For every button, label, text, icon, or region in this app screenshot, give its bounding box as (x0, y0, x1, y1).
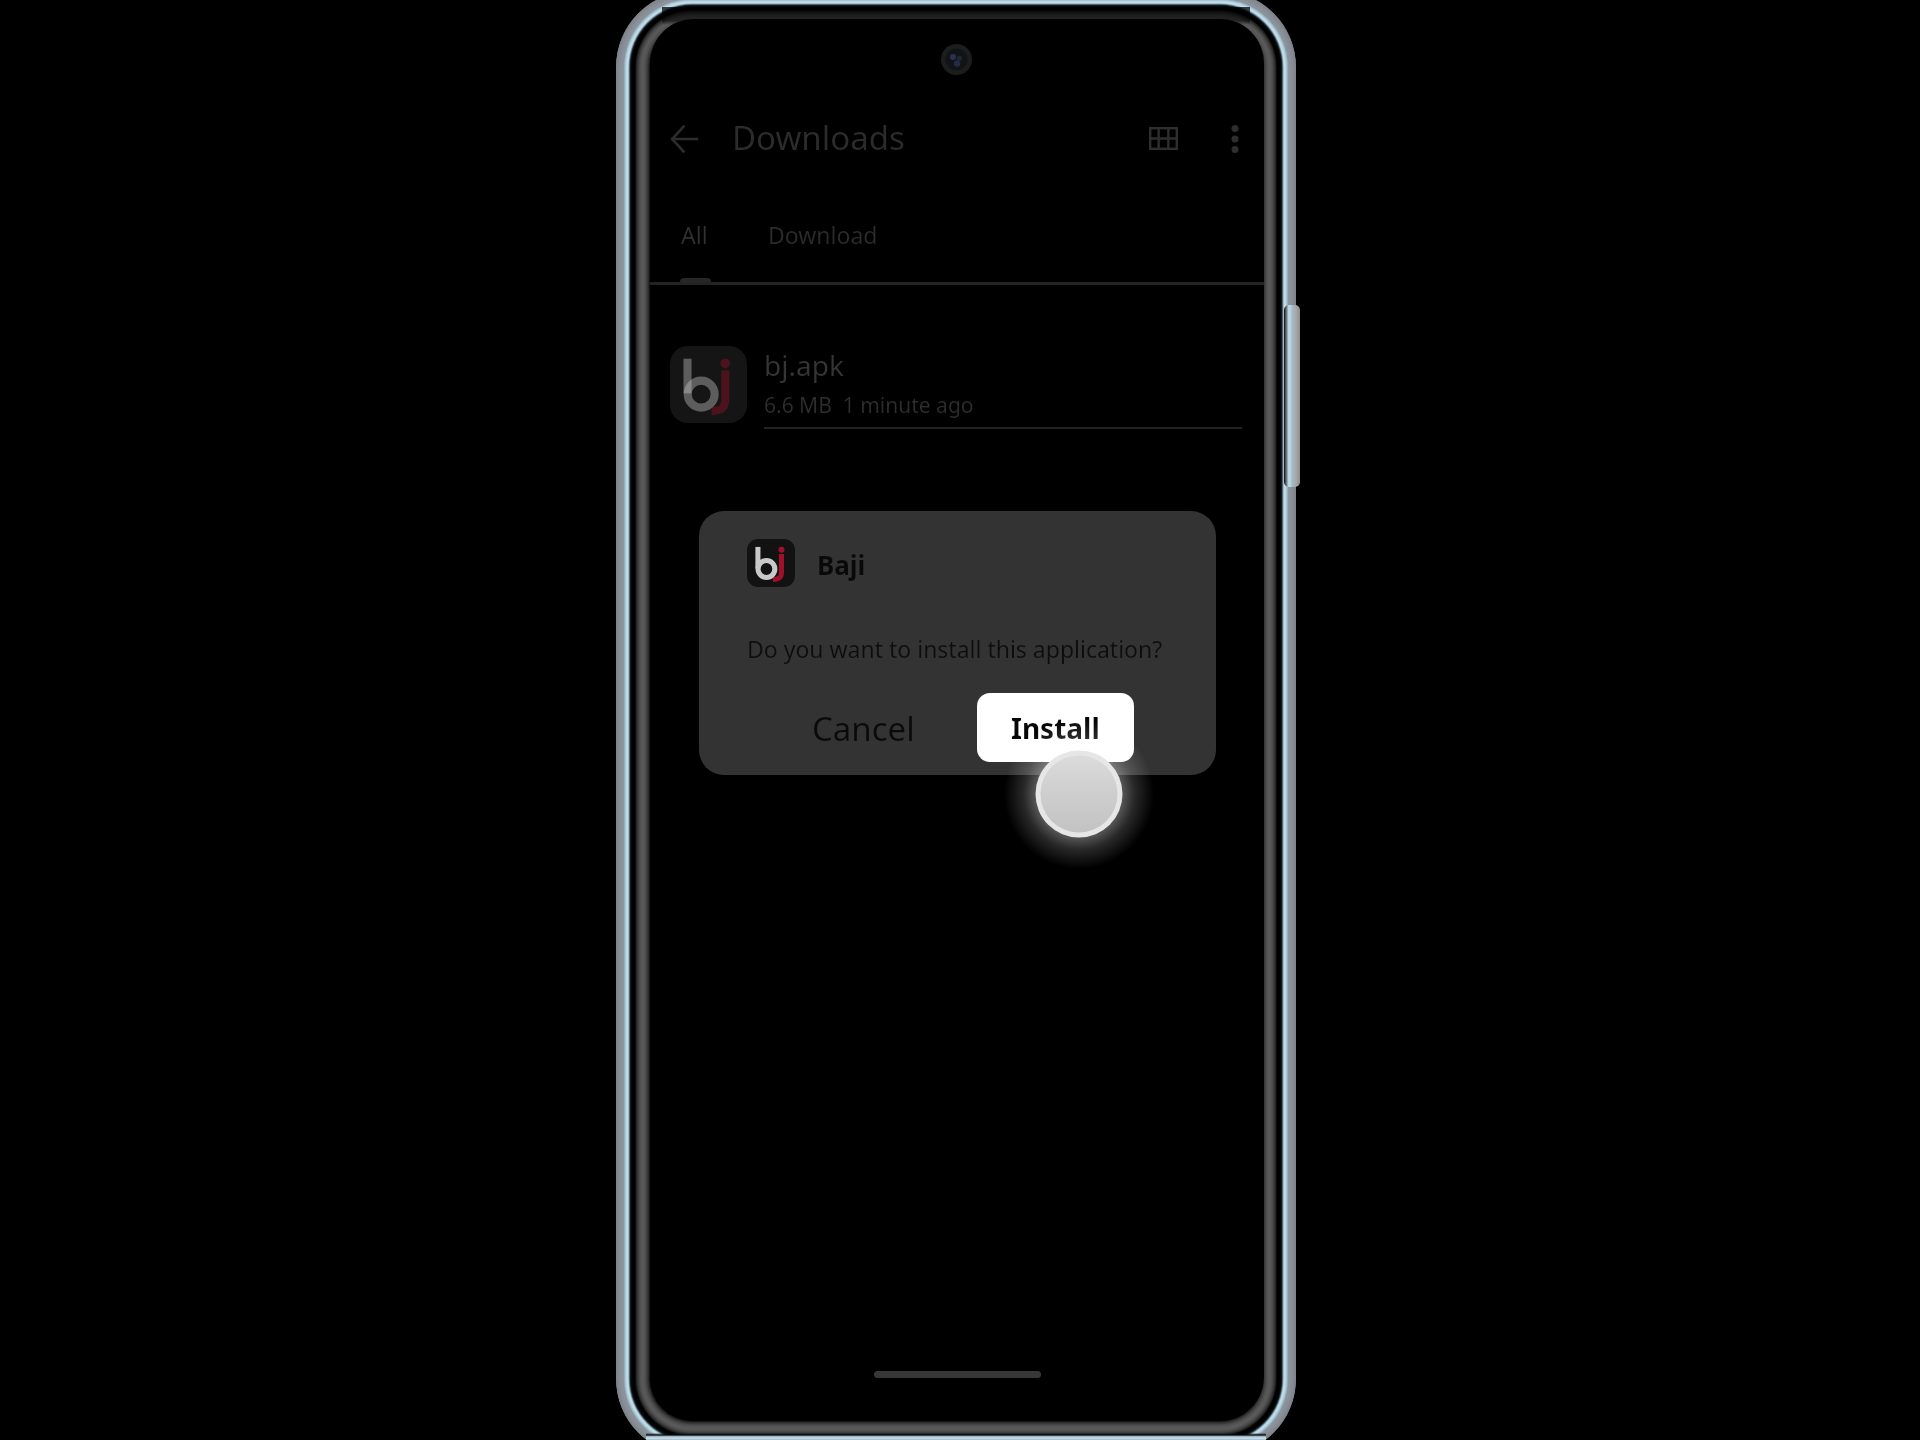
button[interactable]: Cancel (798, 700, 929, 756)
staticText: Do you want to install this application? (747, 633, 1163, 664)
button[interactable] (650, 291, 1264, 439)
button[interactable]: Switch to grid view (1132, 107, 1195, 170)
staticText: Downloads (732, 115, 905, 160)
button[interactable]: Navigate up (652, 107, 715, 170)
staticText: Install (1011, 709, 1100, 747)
button[interactable]: Install (977, 693, 1134, 762)
staticText: Download (768, 219, 878, 250)
button[interactable]: All (659, 199, 729, 269)
staticText: Baji (817, 547, 866, 582)
staticText: All (681, 219, 708, 250)
staticText: 6.6 MB 1 minute ago (764, 391, 974, 420)
staticText: Cancel (812, 706, 915, 751)
button[interactable]: Download (756, 199, 890, 269)
button[interactable]: More options (1203, 107, 1264, 170)
staticText: bj.apk (764, 346, 844, 384)
